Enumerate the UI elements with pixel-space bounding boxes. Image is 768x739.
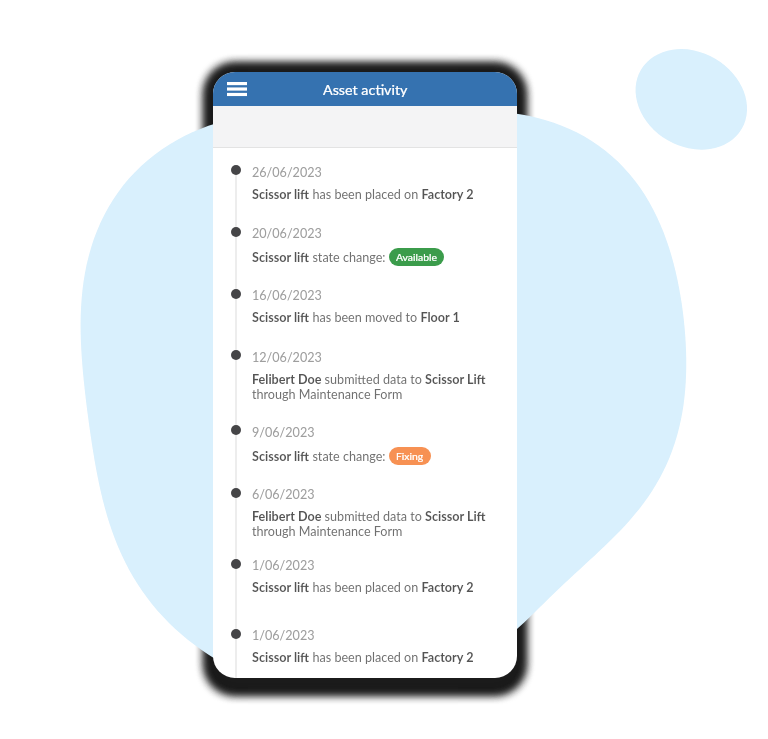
staticText: Available <box>396 251 437 263</box>
button[interactable]: 20/06/2023 <box>252 226 492 259</box>
button[interactable]: Available <box>389 248 444 266</box>
button[interactable]: 12/06/2023 <box>252 350 492 395</box>
staticText: 9/06/2023 <box>252 425 315 440</box>
button[interactable]: 1/06/2023 <box>252 558 492 588</box>
staticText: Scissor lift state change: <box>252 250 389 265</box>
staticText: Fixing <box>396 450 424 462</box>
staticText: Scissor lift state change: <box>252 449 389 464</box>
staticText: 20/06/2023 <box>252 226 322 241</box>
staticText: 26/06/2023 <box>252 165 322 180</box>
staticText: 12/06/2023 <box>252 350 322 365</box>
button[interactable]: 6/06/2023 <box>252 487 492 532</box>
staticText: Scissor lift has been placed on Factory … <box>252 187 474 202</box>
staticText: 1/06/2023 <box>252 558 315 573</box>
button[interactable]: 9/06/2023 <box>252 425 492 458</box>
staticText: Scissor lift has been placed on Factory … <box>252 650 474 665</box>
staticText: 1/06/2023 <box>252 628 315 643</box>
button[interactable]: Fixing <box>389 447 431 465</box>
staticText: 6/06/2023 <box>252 487 315 502</box>
button[interactable]: 1/06/2023 <box>252 628 492 658</box>
staticText: 16/06/2023 <box>252 288 322 303</box>
button[interactable]: 16/06/2023 <box>252 288 492 318</box>
staticText: Felibert Doe submitted data to Scissor L… <box>252 372 492 402</box>
staticText: Scissor lift has been placed on Factory … <box>252 580 474 595</box>
button[interactable]: 26/06/2023 <box>252 165 492 195</box>
staticText: Asset activity <box>323 81 408 98</box>
staticText: Scissor lift has been moved to Floor 1 <box>252 310 460 325</box>
staticText: Felibert Doe submitted data to Scissor L… <box>252 509 492 539</box>
button[interactable]: Open navigation menu <box>223 75 251 103</box>
